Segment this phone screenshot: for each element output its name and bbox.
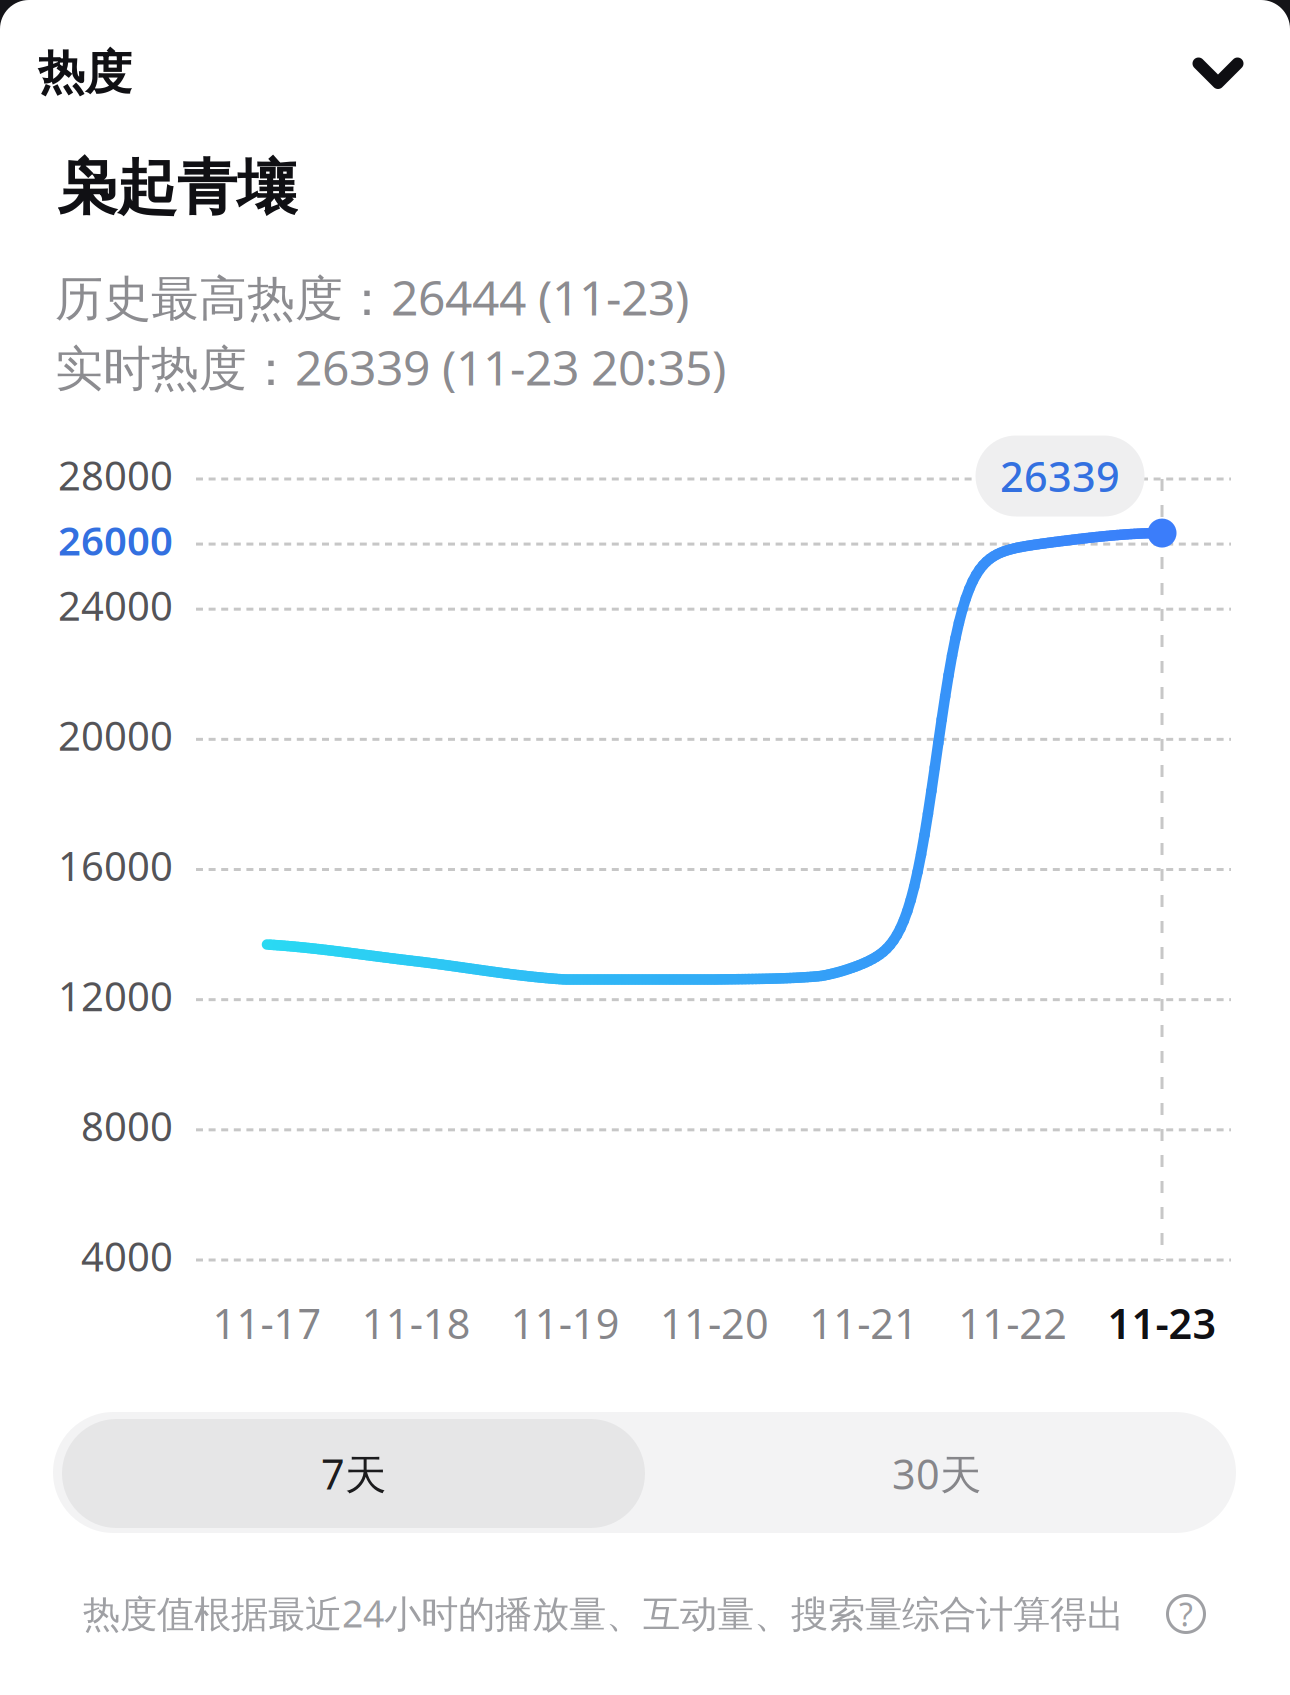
staticText: 11-18 (362, 1296, 471, 1350)
staticText: 实时热度：26339 (11-23 20:35) (55, 335, 726, 399)
staticText: 11-21 (809, 1296, 918, 1350)
staticText: 11-19 (511, 1296, 620, 1350)
staticText: 热度值根据最近24小时的播放量、互动量、搜索量综合计算得出 (83, 1588, 1124, 1638)
staticText: 历史最高热度：26444 (11-23) (55, 265, 689, 329)
staticText: 30天 (892, 1446, 981, 1501)
staticText: ? (1179, 1593, 1193, 1635)
button[interactable]: About heat value (1167, 1595, 1204, 1632)
staticText: 16000 (58, 839, 173, 892)
staticText: 11-23 (1107, 1296, 1216, 1350)
staticText: 24000 (58, 579, 173, 632)
staticText: 枭起青壤 (57, 151, 297, 225)
staticText: 26339 (1000, 449, 1120, 503)
staticText: 4000 (81, 1229, 173, 1282)
button[interactable]: 7天 (62, 1419, 645, 1528)
staticText: 20000 (58, 709, 173, 762)
staticText: 12000 (58, 969, 173, 1022)
staticText: 8000 (81, 1099, 173, 1152)
staticText: 7天 (321, 1446, 386, 1501)
button[interactable]: 30天 (645, 1419, 1228, 1528)
staticText: 热度 (38, 44, 132, 102)
staticText: 11-20 (660, 1296, 769, 1350)
staticText: 11-17 (212, 1296, 321, 1350)
staticText: 11-22 (958, 1296, 1067, 1350)
staticText: 26000 (58, 513, 173, 567)
staticText: 28000 (58, 448, 173, 501)
button[interactable]: Collapse (1156, 14, 1280, 128)
